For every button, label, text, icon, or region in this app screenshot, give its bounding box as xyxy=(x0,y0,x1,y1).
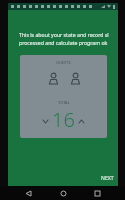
button[interactable]: Children xyxy=(71,72,80,85)
staticText: NEXT xyxy=(101,175,114,182)
staticText: TOTAL xyxy=(58,100,70,105)
staticText: This is about your state and record sl p… xyxy=(19,31,125,46)
staticText: 16 xyxy=(52,106,75,133)
button[interactable]: Home xyxy=(56,186,70,200)
button[interactable]: Recents xyxy=(90,186,104,200)
button[interactable]: Back xyxy=(21,186,35,200)
button[interactable]: Adults xyxy=(49,72,58,85)
button[interactable]: Increase xyxy=(75,115,88,128)
button[interactable]: Decrease xyxy=(39,115,52,128)
staticText: GUESTS xyxy=(56,60,71,65)
button[interactable]: NEXT xyxy=(96,171,119,186)
